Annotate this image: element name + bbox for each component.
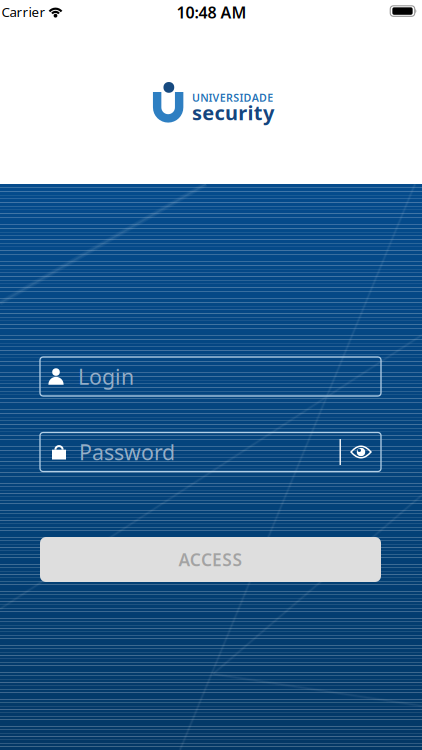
staticText: 10:48 AM	[176, 2, 246, 23]
button[interactable]: Login	[40, 357, 381, 396]
staticText: security	[192, 99, 274, 126]
button[interactable]: Show password	[341, 432, 381, 471]
staticText: ACCESS	[178, 548, 242, 571]
staticText: Login	[78, 362, 134, 391]
staticText: UNIVERSIDADE	[192, 90, 273, 105]
staticText: Password	[79, 438, 175, 466]
button[interactable]: ACCESS	[40, 537, 381, 582]
button[interactable]: Password	[40, 438, 339, 466]
staticText: Carrier	[1, 3, 45, 21]
